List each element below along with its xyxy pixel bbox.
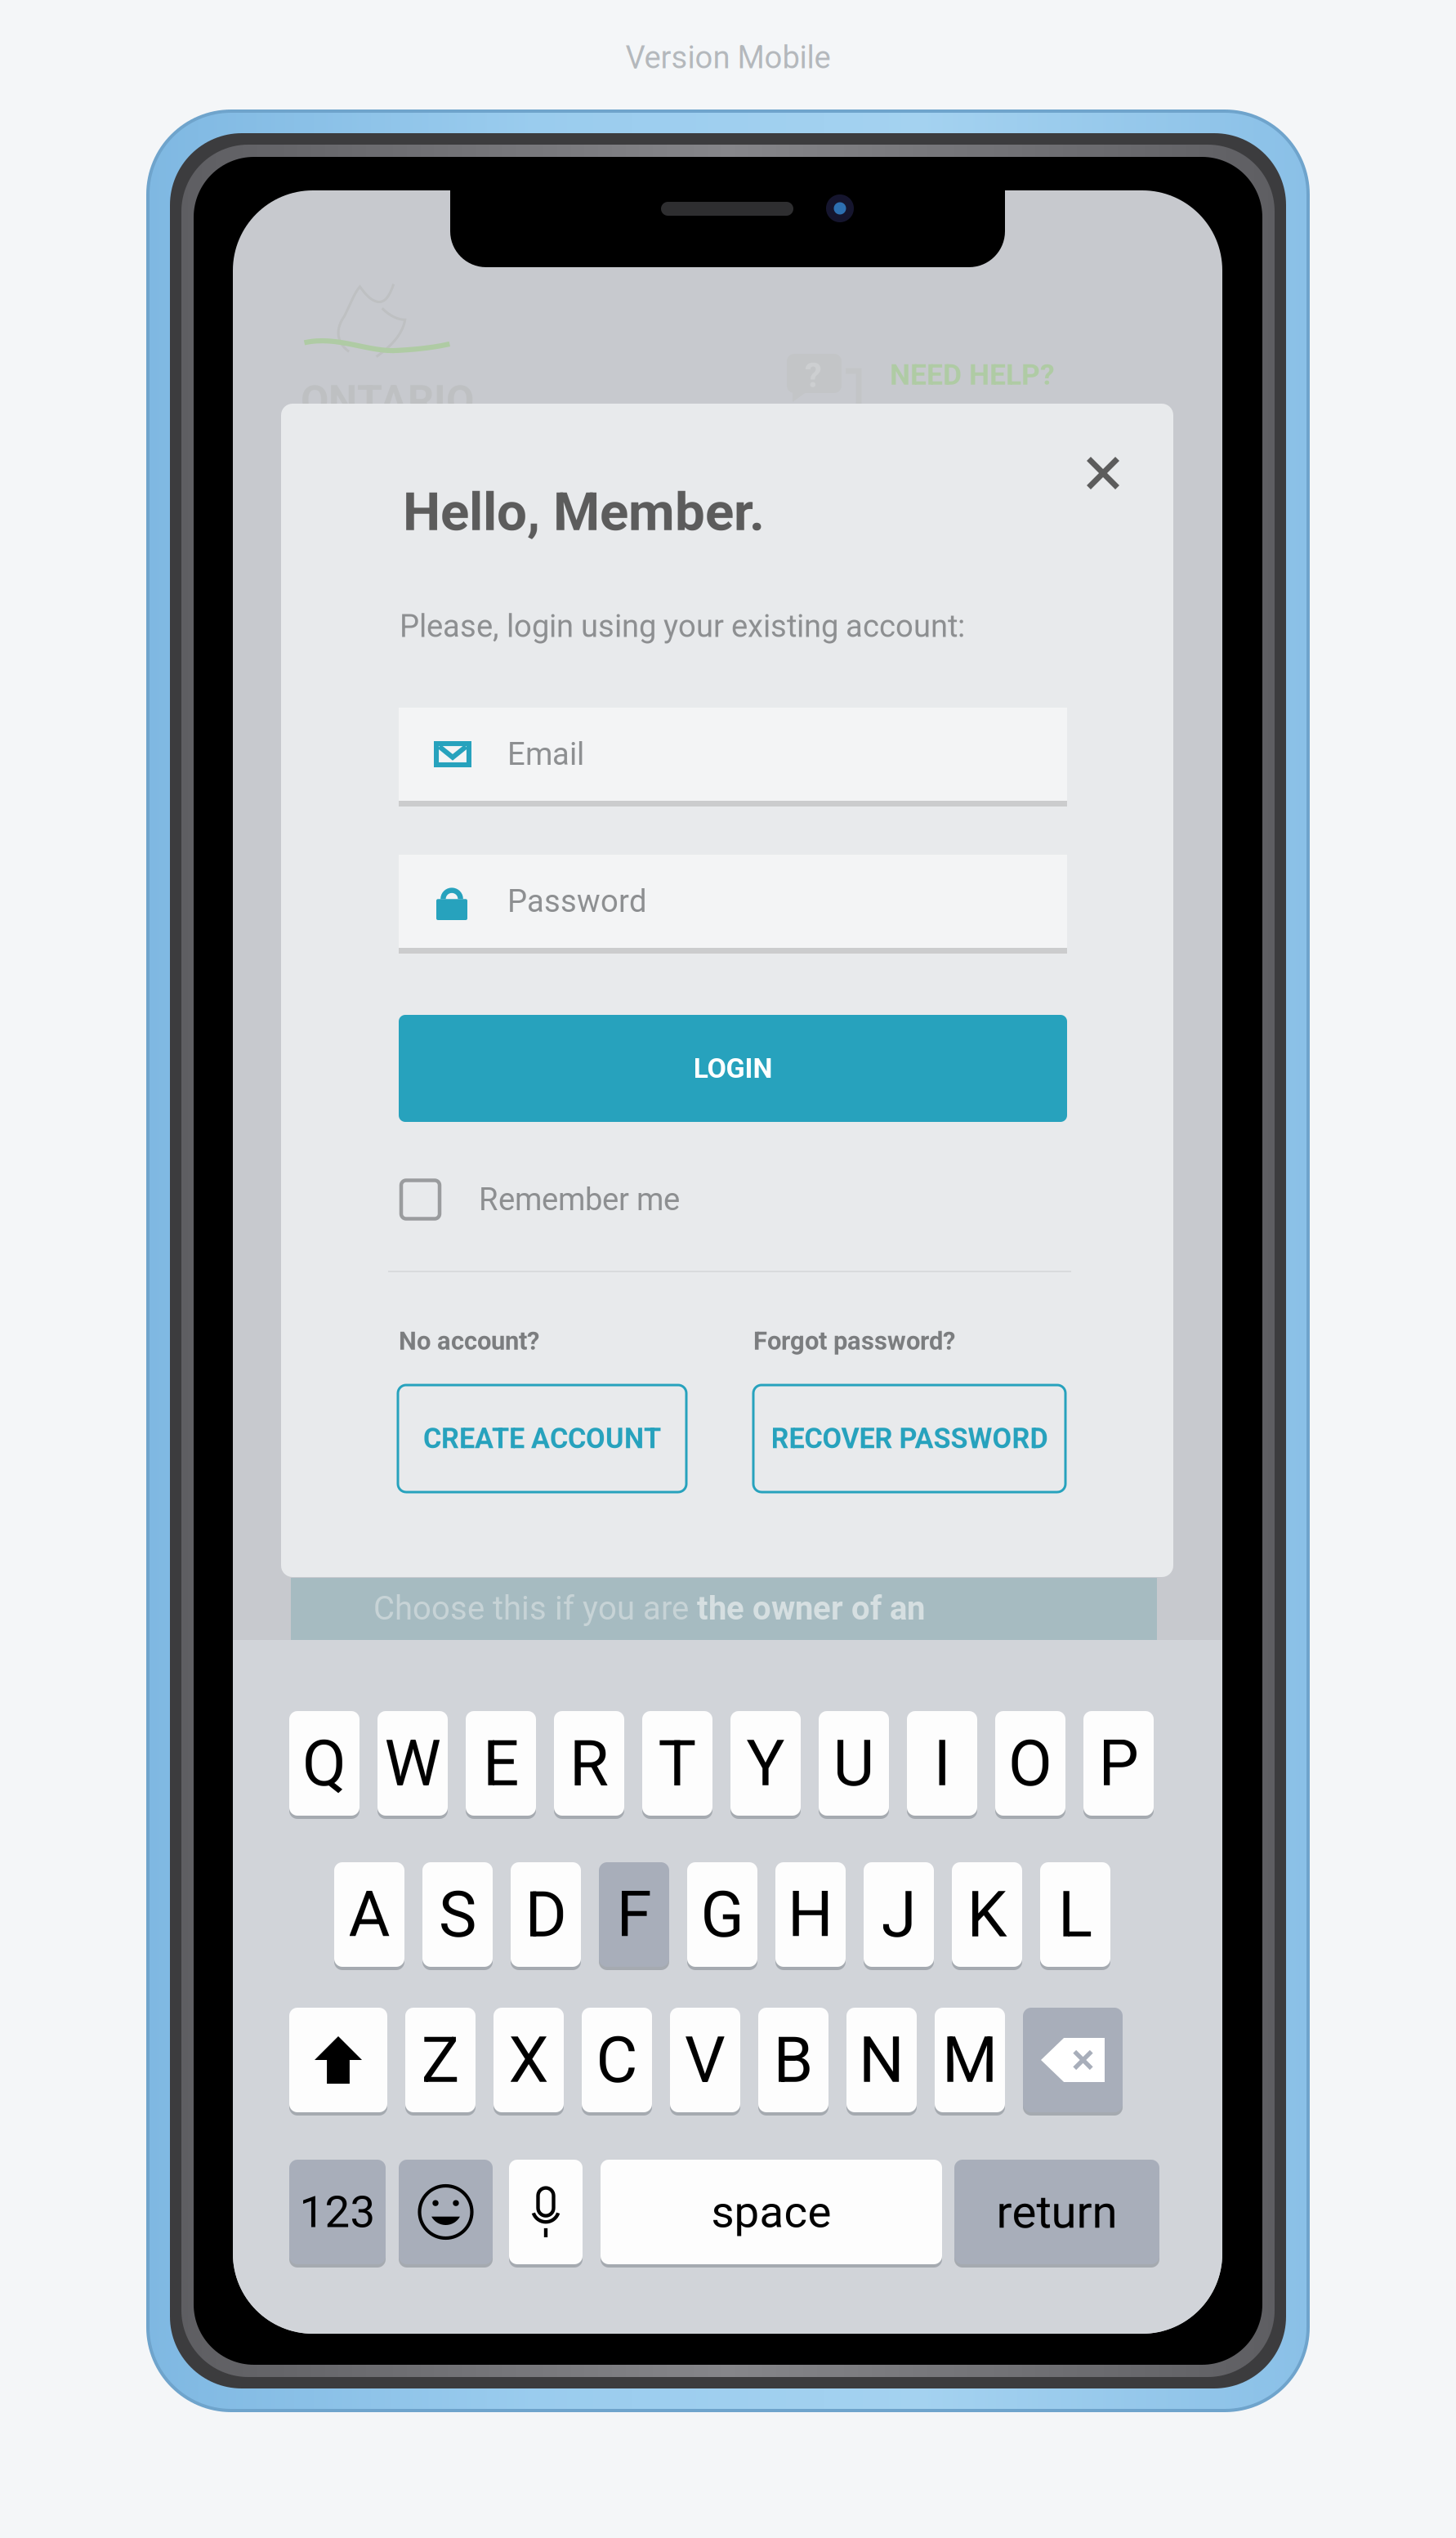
staticText: J [881, 1877, 916, 1952]
button[interactable]: K [952, 1861, 1022, 1968]
staticText: I [933, 1726, 951, 1801]
button[interactable]: D [511, 1861, 581, 1968]
staticText: G [701, 1877, 744, 1952]
staticText: H [788, 1877, 833, 1952]
button[interactable]: G [687, 1861, 757, 1968]
staticText: D [525, 1877, 567, 1952]
staticText: Hello, Member. [403, 480, 765, 543]
staticText: X [509, 2023, 549, 2097]
button[interactable]: R [554, 1709, 624, 1817]
staticText: Please, login using your existing accoun… [400, 608, 965, 644]
button[interactable]: L [1040, 1861, 1110, 1968]
button[interactable]: Delete [1023, 2006, 1123, 2114]
button[interactable]: J [864, 1861, 934, 1968]
button[interactable]: S [422, 1861, 493, 1968]
button[interactable]: Shift [289, 2006, 387, 2114]
staticText: Password [507, 883, 647, 920]
staticText: W [384, 1726, 441, 1801]
button[interactable]: Z [405, 2006, 476, 2114]
staticText: Forgot password? [753, 1326, 955, 1356]
button[interactable]: Remember me [401, 1171, 1070, 1228]
staticText: P [1099, 1726, 1139, 1801]
staticText: E [483, 1726, 519, 1801]
button[interactable]: space [601, 2158, 942, 2266]
staticText: A [348, 1877, 390, 1952]
button[interactable]: B [758, 2006, 828, 2114]
button[interactable]: I [907, 1709, 977, 1817]
button[interactable]: U [819, 1709, 889, 1817]
staticText: NEED HELP? [890, 358, 1055, 392]
button[interactable]: V [670, 2006, 740, 2114]
button[interactable]: LOGIN [399, 1015, 1067, 1122]
button[interactable]: C [582, 2006, 652, 2114]
button[interactable]: Emoji [399, 2158, 493, 2266]
staticText: Y [746, 1726, 785, 1801]
staticText: C [596, 2023, 638, 2097]
staticText: T [658, 1726, 697, 1801]
button[interactable]: Dictate [509, 2158, 583, 2266]
button[interactable]: X [494, 2006, 564, 2114]
staticText: Email [507, 736, 584, 773]
staticText: B [773, 2023, 813, 2097]
staticText: LOGIN [693, 1052, 773, 1085]
button[interactable]: F [599, 1861, 669, 1968]
staticText: 123 [299, 2186, 375, 2238]
button[interactable]: P [1083, 1709, 1154, 1817]
staticText: F [616, 1877, 652, 1952]
button[interactable]: return [954, 2158, 1159, 2266]
staticText: return [996, 2185, 1117, 2239]
staticText: R [569, 1726, 609, 1801]
staticText: ? [805, 355, 822, 395]
staticText: Q [302, 1726, 346, 1801]
staticText: ... [890, 399, 909, 428]
button[interactable]: H [775, 1861, 846, 1968]
staticText: ONTARIO [301, 377, 474, 424]
staticText: CREATE ACCOUNT [423, 1422, 661, 1455]
staticText: S [439, 1877, 476, 1952]
button[interactable]: M [935, 2006, 1005, 2114]
button[interactable]: N [846, 2006, 917, 2114]
staticText: the owner of an [697, 1589, 925, 1628]
staticText: K [967, 1877, 1007, 1952]
button[interactable]: T [642, 1709, 712, 1817]
button[interactable]: CREATE ACCOUNT [398, 1385, 686, 1492]
button[interactable]: A [334, 1861, 404, 1968]
button[interactable]: O [995, 1709, 1065, 1817]
staticText: L [1058, 1877, 1092, 1952]
button[interactable]: 123 [289, 2158, 386, 2266]
button[interactable]: Close [1066, 436, 1140, 510]
staticText: M [942, 2023, 998, 2097]
staticText: O [1008, 1726, 1052, 1801]
button[interactable]: RECOVER PASSWORD [753, 1385, 1065, 1492]
staticText: Remember me [479, 1181, 680, 1218]
staticText: No account? [399, 1326, 539, 1356]
staticText: Choose this if you are [373, 1589, 697, 1628]
staticText: Version Mobile [625, 39, 831, 76]
staticText: Z [421, 2023, 460, 2097]
staticText: U [833, 1726, 875, 1801]
button[interactable]: Q [289, 1709, 360, 1817]
staticText: space [711, 2186, 831, 2238]
staticText: N [859, 2023, 904, 2097]
button[interactable]: Y [730, 1709, 801, 1817]
staticText: RECOVER PASSWORD [771, 1422, 1048, 1455]
button[interactable]: E [466, 1709, 536, 1817]
button[interactable]: W [377, 1709, 448, 1817]
staticText: V [685, 2023, 726, 2097]
